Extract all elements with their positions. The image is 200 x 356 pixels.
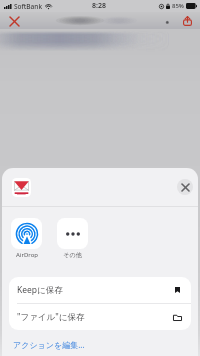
button[interactable] xyxy=(12,178,31,197)
staticText: AirDrop xyxy=(16,251,38,259)
button[interactable]: 閉じる xyxy=(177,179,193,195)
staticText: "ファイル"に保存 xyxy=(17,311,85,323)
button[interactable]: Keepに保存 xyxy=(9,277,191,303)
button[interactable]: その他 xyxy=(57,207,88,259)
staticText: 8:28 xyxy=(92,1,106,11)
button[interactable]: アクションを編集... xyxy=(13,339,85,350)
staticText: Keepに保存 xyxy=(17,284,63,296)
button[interactable]: 共有 xyxy=(179,13,195,29)
staticText: SoftBank xyxy=(14,2,43,11)
button[interactable]: 閉じる xyxy=(6,13,22,29)
staticText: 85% xyxy=(172,2,184,10)
button[interactable]: "ファイル"に保存 xyxy=(9,304,191,330)
button[interactable]: AirDrop xyxy=(11,207,42,259)
staticText: その他 xyxy=(63,251,82,259)
